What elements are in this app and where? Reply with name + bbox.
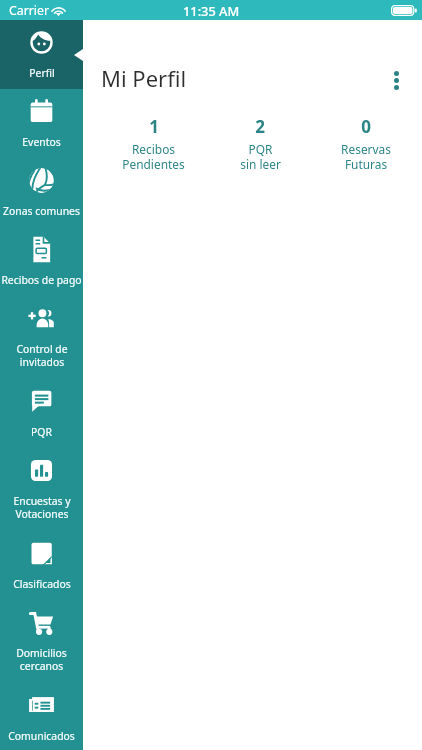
staticText: Eventos	[22, 135, 61, 149]
staticText: Recibos de pago	[1, 273, 82, 287]
staticText: Carrier	[9, 2, 50, 19]
staticText: Encuestas y Votaciones	[13, 494, 71, 521]
button[interactable]: More options	[380, 64, 412, 96]
button[interactable]: 1	[100, 115, 207, 172]
staticText: Domicilios cercanos	[16, 646, 67, 673]
staticText: Comunicados	[8, 729, 75, 743]
staticText: PQR	[31, 425, 52, 439]
staticText: 2	[255, 115, 265, 138]
staticText: Zonas comunes	[3, 204, 80, 218]
staticText: Control de invitados	[16, 342, 68, 369]
button[interactable]: Zonas comunes	[0, 158, 83, 227]
button[interactable]: Domicilios cercanos	[0, 600, 83, 683]
staticText: Reservas Futuras	[341, 141, 391, 172]
button[interactable]: Recibos de pago	[0, 227, 83, 296]
staticText: Perfil	[29, 66, 55, 80]
button[interactable]: 2	[207, 115, 313, 172]
button[interactable]: Perfil	[0, 20, 83, 89]
button[interactable]: Comunicados	[0, 683, 83, 750]
staticText: Recibos Pendientes	[122, 141, 185, 172]
staticText: 0	[361, 115, 371, 138]
staticText: 1	[149, 115, 159, 138]
staticText: PQR sin leer	[240, 141, 281, 172]
button[interactable]: Encuestas y Votaciones	[0, 448, 83, 531]
button[interactable]: Control de invitados	[0, 296, 83, 379]
button[interactable]: Clasificados	[0, 531, 83, 600]
button[interactable]: PQR	[0, 379, 83, 448]
staticText: 11:35 AM	[183, 2, 240, 19]
button[interactable]: Eventos	[0, 89, 83, 158]
staticText: Clasificados	[13, 577, 71, 591]
button[interactable]: 0	[313, 115, 419, 172]
staticText: Mi Perfil	[101, 63, 187, 93]
